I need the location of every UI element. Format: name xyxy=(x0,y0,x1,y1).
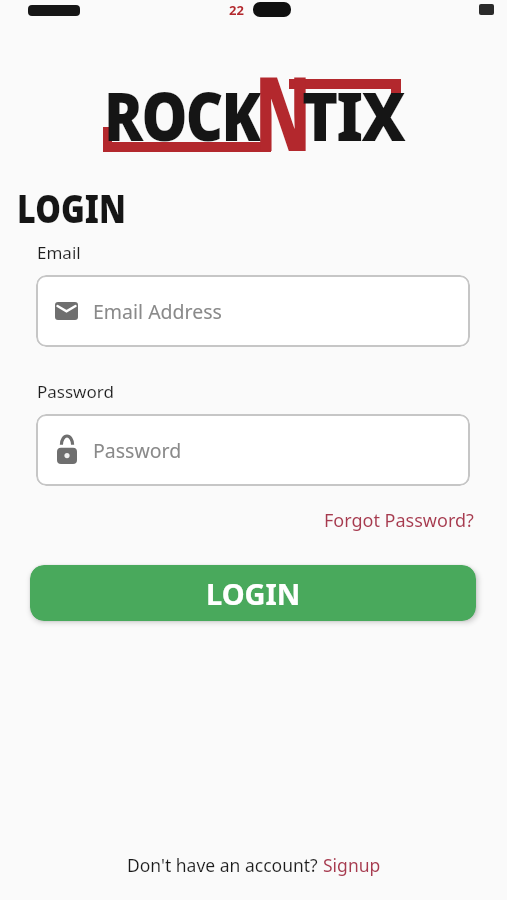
staticText: LOGIN xyxy=(206,574,301,613)
staticText: Password xyxy=(37,380,114,403)
staticText: 22 xyxy=(229,1,244,19)
staticText: LOGIN xyxy=(17,182,127,234)
staticText: Don't have an account? xyxy=(127,853,323,877)
staticText: TIX xyxy=(302,68,405,151)
staticText: Email xyxy=(37,241,81,264)
button[interactable]: LOGIN xyxy=(30,565,476,621)
staticText: Password xyxy=(93,437,182,464)
staticText: Email Address xyxy=(93,298,222,325)
button[interactable]: Password xyxy=(36,414,470,486)
button[interactable]: Email Address xyxy=(36,275,470,347)
staticText: ROCK xyxy=(104,68,260,151)
button[interactable]: Signup xyxy=(323,853,381,877)
button[interactable]: Forgot Password? xyxy=(324,508,474,533)
staticText: N xyxy=(255,41,311,124)
